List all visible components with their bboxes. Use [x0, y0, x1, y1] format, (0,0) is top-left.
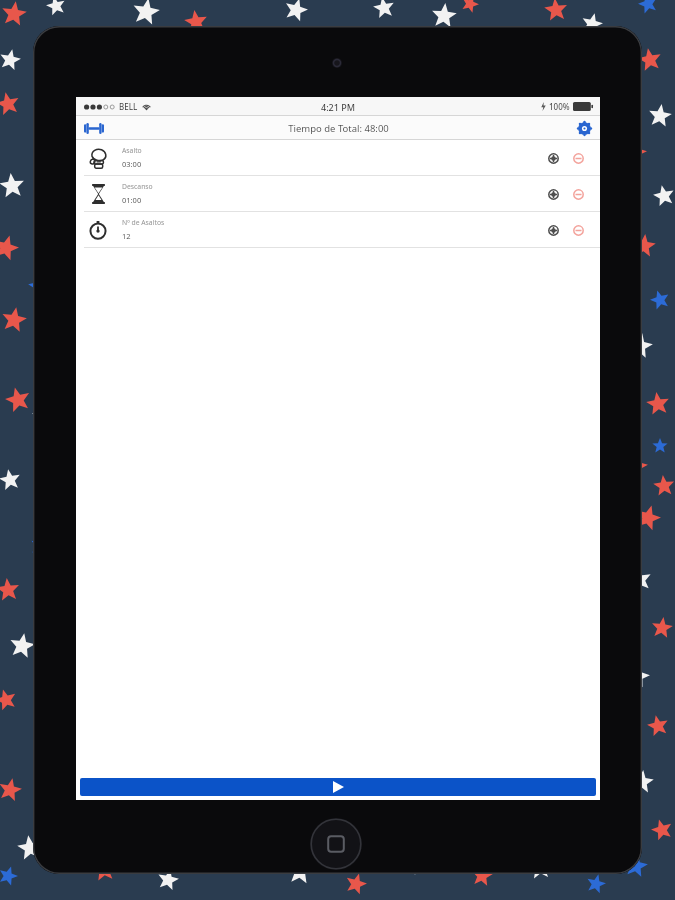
button[interactable]: Asalto [76, 140, 600, 175]
button[interactable]: Start [80, 778, 596, 796]
button[interactable]: Nº de Asaltos [76, 212, 600, 247]
button[interactable]: Increase [545, 186, 561, 202]
button[interactable]: Workouts [81, 117, 107, 139]
button[interactable]: Increase [545, 150, 561, 166]
staticText: 12 [122, 231, 131, 241]
button[interactable]: Descanso [76, 176, 600, 211]
button[interactable]: Settings [574, 118, 594, 138]
staticText: Nº de Asaltos [122, 218, 165, 227]
button[interactable]: Decrease [570, 222, 586, 238]
staticText: Asalto [122, 146, 142, 155]
staticText: BELL [119, 101, 138, 112]
button[interactable]: Decrease [570, 186, 586, 202]
staticText: 100% [549, 101, 570, 112]
staticText: 01:00 [122, 195, 142, 205]
staticText: Descanso [122, 182, 153, 191]
staticText: 4:21 PM [321, 101, 355, 113]
button[interactable]: Increase [545, 222, 561, 238]
button[interactable]: Home [310, 818, 362, 870]
staticText: Tiempo de Total: 48:00 [288, 122, 389, 135]
staticText: 03:00 [122, 159, 142, 169]
button[interactable]: Decrease [570, 150, 586, 166]
